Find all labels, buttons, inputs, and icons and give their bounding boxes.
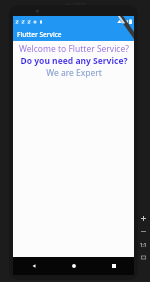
staticText: 1:1	[140, 242, 147, 248]
staticText: Welcome to Flutter Service?	[19, 43, 129, 55]
button[interactable]: Back	[13, 257, 54, 275]
button[interactable]: Zoom in	[138, 212, 149, 225]
staticText: We are Expert	[46, 67, 102, 79]
staticText: Pixel 2 API 30	[66, 3, 85, 7]
button[interactable]: Home	[54, 257, 94, 275]
staticText: Do you need any Service?	[20, 55, 128, 67]
button[interactable]: Actual size	[138, 238, 149, 251]
button[interactable]: Recent apps	[94, 257, 134, 275]
staticText: Flutter Service	[17, 30, 62, 39]
button[interactable]: Zoom out	[138, 225, 149, 238]
button[interactable]: Screenshot	[138, 251, 149, 264]
